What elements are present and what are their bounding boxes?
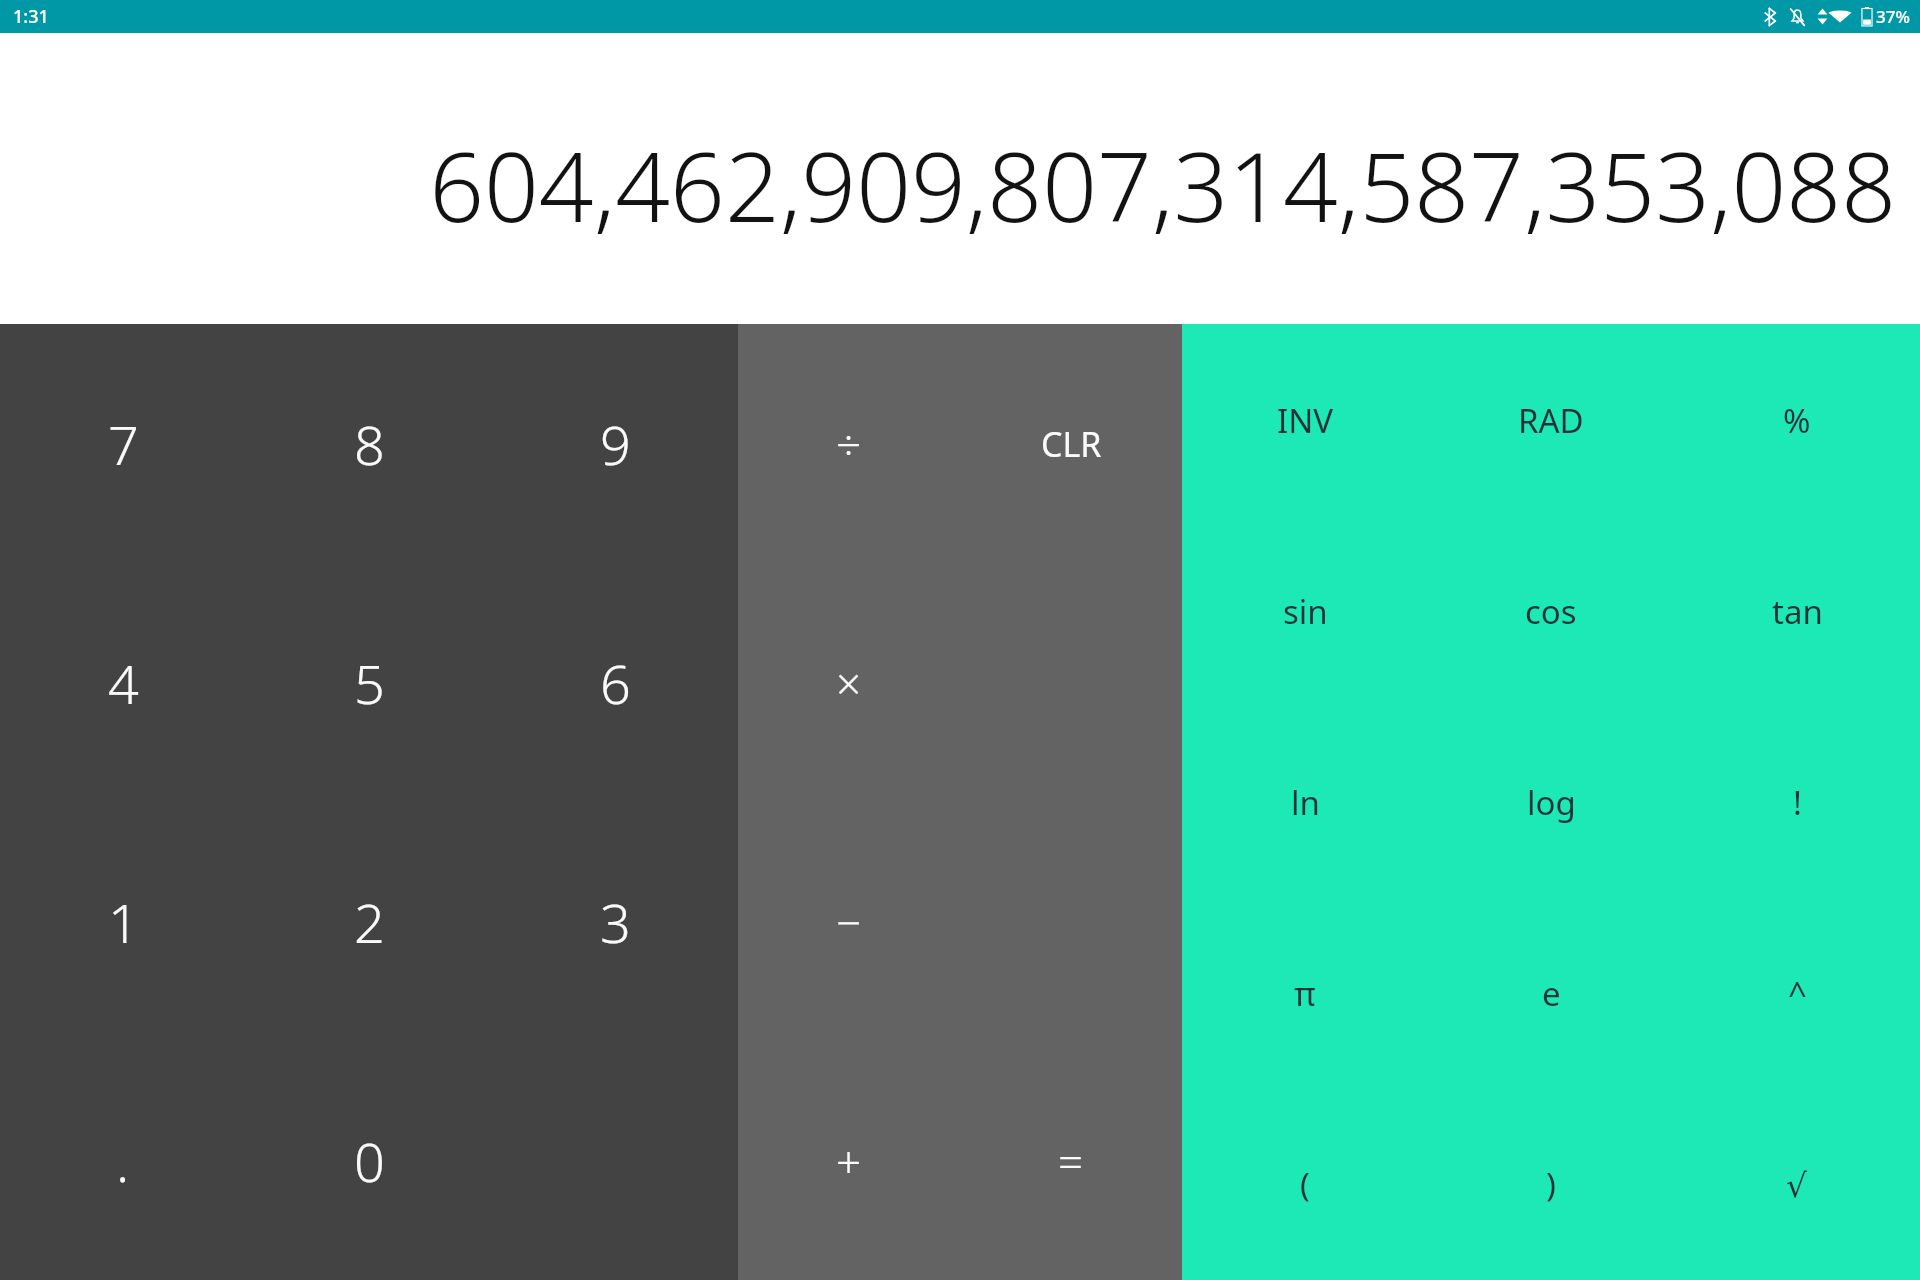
staticText: × <box>836 653 862 713</box>
staticText: ÷ <box>836 414 862 474</box>
button[interactable]: 604,462,909,807,314,587,353,088 <box>0 33 1920 324</box>
button[interactable]: tan <box>1674 516 1920 707</box>
staticText: ! <box>1793 780 1802 825</box>
button[interactable]: CLR <box>960 324 1182 563</box>
staticText: = <box>1058 1131 1084 1191</box>
button[interactable]: RAD <box>1428 324 1674 516</box>
button[interactable]: INV <box>1182 324 1428 516</box>
staticText: 2 <box>354 885 385 959</box>
staticText: 5 <box>354 646 385 720</box>
button[interactable]: √ <box>1674 1089 1920 1280</box>
staticText: π <box>1294 971 1316 1016</box>
button[interactable]: 9 <box>492 324 738 563</box>
staticText: √ <box>1786 1166 1808 1204</box>
button[interactable]: 0 <box>246 1041 492 1280</box>
button[interactable]: 5 <box>246 563 492 802</box>
staticText: 4 <box>108 646 139 720</box>
button[interactable]: 6 <box>492 563 738 802</box>
staticText: 9 <box>600 407 631 481</box>
staticText: 6 <box>600 646 631 720</box>
button[interactable]: ln <box>1182 707 1428 898</box>
button[interactable]: π <box>1182 898 1428 1089</box>
button[interactable]: 8 <box>246 324 492 563</box>
staticText: CLR <box>1041 421 1102 467</box>
button[interactable]: 7 <box>0 324 246 563</box>
button[interactable]: 4 <box>0 563 246 802</box>
button[interactable]: Multiply <box>738 563 960 802</box>
button[interactable]: cos <box>1428 516 1674 707</box>
button[interactable]: ) <box>1428 1089 1674 1280</box>
button[interactable]: 1 <box>0 802 246 1041</box>
staticText: ) <box>1546 1162 1556 1207</box>
staticText: sin <box>1283 589 1328 634</box>
button[interactable]: Equals <box>960 1041 1182 1280</box>
button[interactable]: Add <box>738 1041 960 1280</box>
staticText: 1 <box>108 885 139 959</box>
staticText: 8 <box>354 407 385 481</box>
button[interactable]: 3 <box>492 802 738 1041</box>
staticText: cos <box>1525 589 1577 634</box>
button[interactable]: log <box>1428 707 1674 898</box>
staticText: tan <box>1772 589 1823 634</box>
button[interactable]: ( <box>1182 1089 1428 1280</box>
button[interactable]: Subtract <box>738 802 960 1041</box>
staticText: % <box>1783 398 1811 443</box>
button[interactable]: Divide <box>738 324 960 563</box>
staticText: 1:31 <box>13 4 49 29</box>
staticText: 604,462,909,807,314,587,353,088 <box>429 119 1896 250</box>
button[interactable]: % <box>1674 324 1920 516</box>
button[interactable]: e <box>1428 898 1674 1089</box>
button[interactable]: ! <box>1674 707 1920 898</box>
button[interactable]: . <box>0 1041 246 1280</box>
staticText: e <box>1542 971 1561 1016</box>
staticText: 7 <box>108 407 139 481</box>
staticText: . <box>116 1124 130 1198</box>
button[interactable]: ^ <box>1674 898 1920 1089</box>
staticText: 0 <box>354 1124 385 1198</box>
button[interactable]: 2 <box>246 802 492 1041</box>
staticText: + <box>836 1131 862 1191</box>
button[interactable]: sin <box>1182 516 1428 707</box>
staticText: 37% <box>1876 5 1910 28</box>
staticText: RAD <box>1518 398 1584 443</box>
staticText: ln <box>1291 780 1320 825</box>
staticText: log <box>1527 780 1576 825</box>
staticText: INV <box>1277 398 1334 443</box>
staticText: ^ <box>1788 971 1807 1016</box>
staticText: 3 <box>600 885 631 959</box>
staticText: ( <box>1300 1162 1310 1207</box>
staticText: − <box>836 892 862 952</box>
